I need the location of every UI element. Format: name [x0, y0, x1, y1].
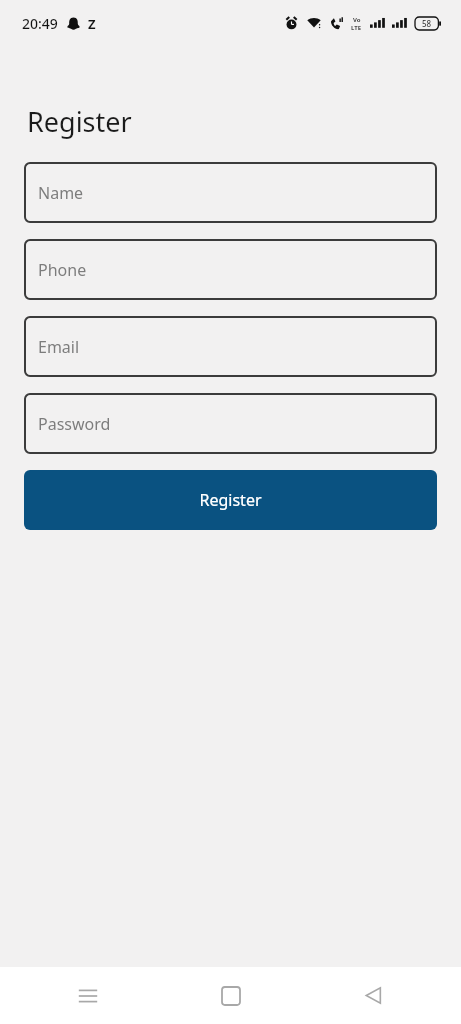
staticText: Password: [38, 413, 111, 435]
button[interactable]: Home: [176, 967, 286, 1024]
button[interactable]: Name: [24, 162, 437, 223]
button[interactable]: Back: [318, 967, 428, 1024]
button[interactable]: Email: [24, 316, 437, 377]
staticText: 58: [422, 18, 432, 29]
staticText: Z: [88, 15, 96, 33]
staticText: Register: [27, 103, 132, 140]
staticText: LTE: [351, 24, 362, 30]
button[interactable]: Phone: [24, 239, 437, 300]
staticText: Vo: [353, 16, 361, 24]
button[interactable]: Recent apps: [33, 967, 143, 1024]
staticText: Register: [199, 489, 262, 511]
staticText: Email: [38, 336, 80, 358]
staticText: 20:49: [22, 14, 58, 33]
button[interactable]: Register: [24, 470, 437, 530]
staticText: Phone: [38, 259, 87, 281]
button[interactable]: Password: [24, 393, 437, 454]
staticText: Name: [38, 182, 84, 204]
